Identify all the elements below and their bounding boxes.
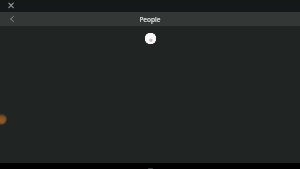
button[interactable]: Close	[5, 0, 17, 12]
button[interactable]: Navigate up	[5, 12, 19, 26]
staticText: People	[139, 15, 161, 24]
